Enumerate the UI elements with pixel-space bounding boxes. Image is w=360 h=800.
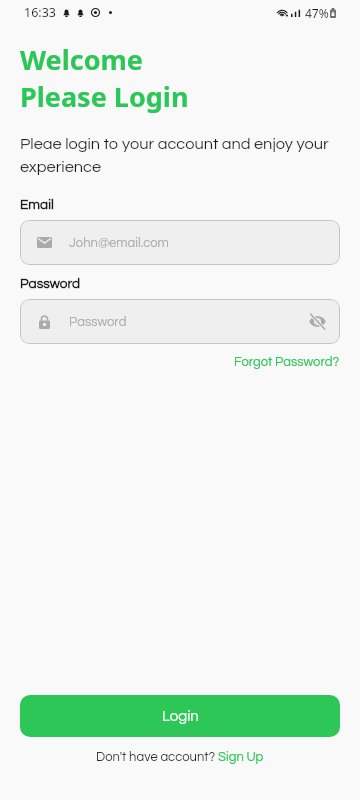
staticText: John@email.com: [69, 236, 169, 249]
staticText: Login: [162, 709, 199, 724]
staticText: Please Login: [20, 78, 189, 115]
staticText: 16:33: [24, 4, 56, 21]
staticText: Password: [20, 277, 81, 291]
staticText: Pleae login to your account and enjoy yo…: [20, 136, 340, 176]
button[interactable]: Forgot Password?: [234, 355, 340, 368]
button[interactable]: Sign Up: [218, 750, 264, 763]
button[interactable]: Login: [20, 695, 340, 737]
other: Show password: [309, 313, 326, 330]
staticText: Email: [20, 198, 54, 212]
staticText: Welcome: [20, 41, 143, 78]
button[interactable]: John@email.com: [20, 220, 340, 265]
staticText: Don't have account?: [96, 750, 218, 763]
staticText: Password: [69, 315, 127, 328]
staticText: 47%: [305, 5, 329, 21]
button[interactable]: Password: [20, 299, 340, 344]
